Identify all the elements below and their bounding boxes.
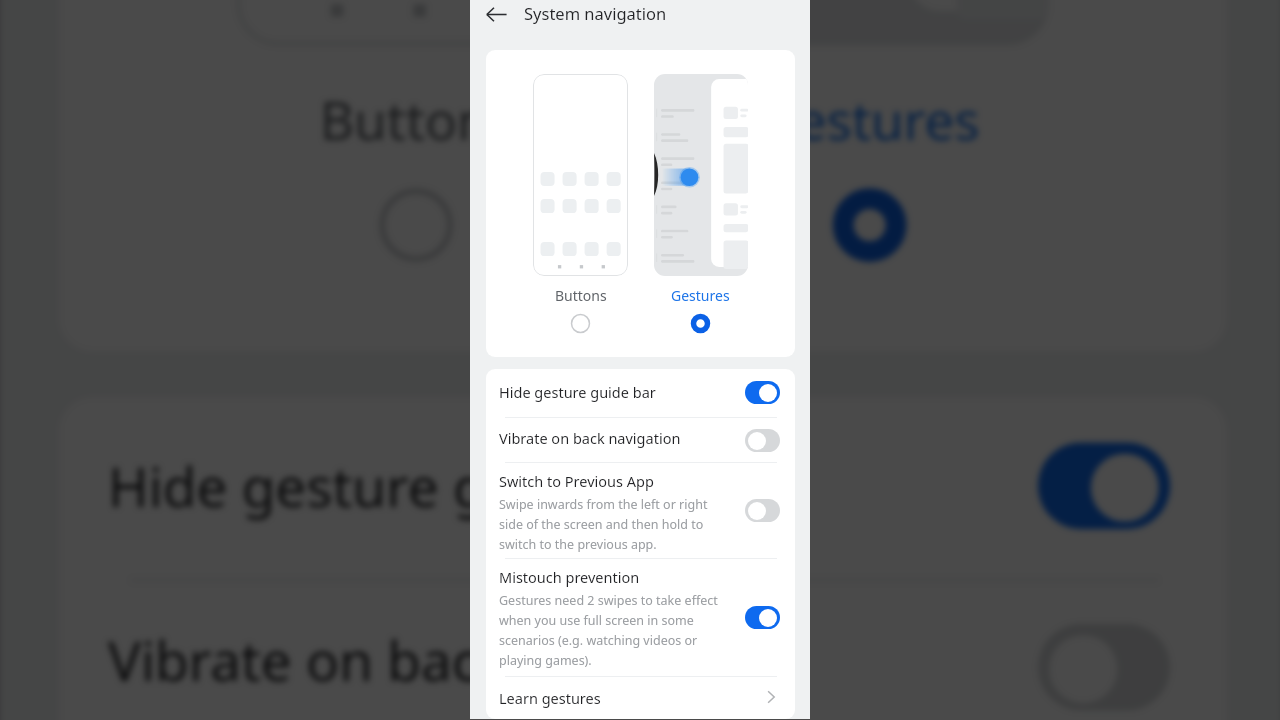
button[interactable]: Toggle <box>745 606 780 629</box>
button[interactable]: Vibrate on back navigation <box>486 418 795 463</box>
staticText: Learn gestures <box>499 688 601 708</box>
button[interactable]: Mistouch prevention <box>486 559 795 676</box>
button[interactable]: Buttons <box>180 0 652 261</box>
staticText: Hide gesture guide bar <box>499 382 727 402</box>
staticText: Buttons <box>555 286 607 305</box>
staticText: Gestures <box>671 286 730 305</box>
button[interactable]: Hide gesture guide bar <box>59 397 1227 578</box>
button[interactable]: Back <box>484 2 508 26</box>
button[interactable]: Gestures <box>638 74 763 333</box>
button[interactable]: Toggle <box>745 499 780 522</box>
staticText: Vibrate on back navigation <box>108 620 970 696</box>
button[interactable]: Vibrate on back navigation <box>59 582 1227 720</box>
staticText: Gestures need 2 swipes to take effect wh… <box>499 592 727 669</box>
button[interactable]: Toggle <box>745 381 780 404</box>
staticText: Swipe inwards from the left or right sid… <box>499 496 727 553</box>
button[interactable]: Toggle <box>745 429 780 452</box>
staticText: System navigation <box>524 2 667 24</box>
button[interactable]: Learn gestures <box>486 677 795 717</box>
staticText: Vibrate on back navigation <box>499 428 727 448</box>
button[interactable]: Toggle <box>1038 624 1170 711</box>
button[interactable]: Hide gesture guide bar <box>486 369 795 417</box>
button[interactable]: Gestures <box>633 0 1106 261</box>
staticText: Hide gesture guide bar <box>108 446 970 522</box>
button[interactable]: Buttons <box>518 74 643 333</box>
button[interactable]: Toggle <box>1038 442 1170 529</box>
staticText: Mistouch prevention <box>499 567 727 587</box>
button[interactable]: Switch to Previous App <box>486 463 795 558</box>
staticText: Switch to Previous App <box>499 471 727 491</box>
staticText: Gestures <box>758 83 981 155</box>
staticText: Buttons <box>320 83 516 155</box>
